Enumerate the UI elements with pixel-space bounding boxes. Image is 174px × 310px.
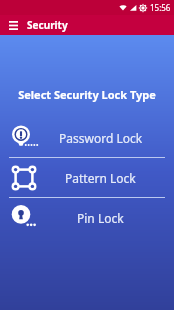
button[interactable]: Open navigation menu <box>5 17 21 33</box>
staticText: Pattern Lock <box>65 170 136 186</box>
button[interactable]: Pin Lock <box>0 198 174 237</box>
staticText: Select Security Lock Type <box>0 87 174 102</box>
staticText: 15:56 <box>150 2 171 13</box>
button[interactable]: Password Lock <box>0 118 174 157</box>
staticText: Password Lock <box>59 130 143 146</box>
button[interactable]: Pattern Lock <box>0 158 174 197</box>
staticText: Security <box>27 18 68 32</box>
staticText: Pin Lock <box>77 210 124 226</box>
